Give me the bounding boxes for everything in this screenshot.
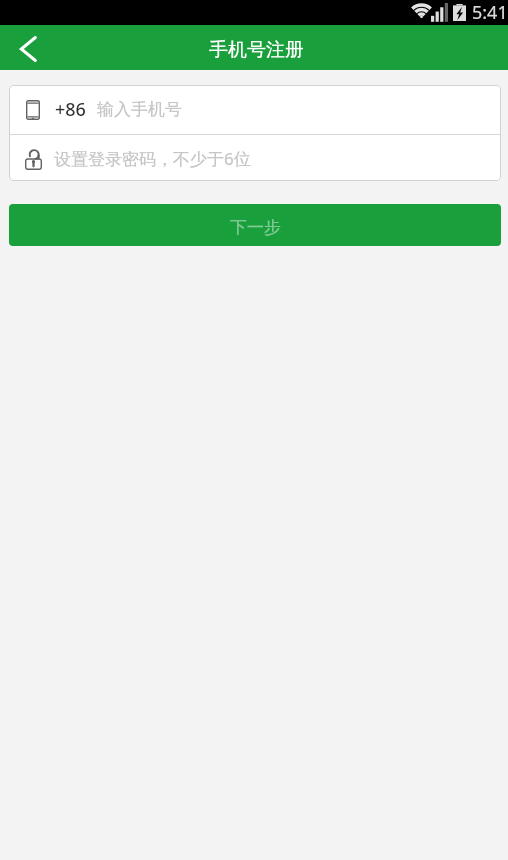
button[interactable]: Back (0, 25, 55, 70)
button[interactable]: +86 (9, 85, 501, 134)
staticText: +86 (55, 97, 86, 122)
staticText: 下一步 (230, 217, 281, 238)
button[interactable]: 设置登录密码，不少于6位 (9, 135, 501, 181)
staticText: 5:41 (472, 0, 508, 25)
staticText: 设置登录密码，不少于6位 (54, 147, 251, 170)
staticText: 输入手机号 (97, 99, 182, 120)
button[interactable]: 下一步 (9, 204, 501, 246)
staticText: 手机号注册 (209, 38, 304, 62)
